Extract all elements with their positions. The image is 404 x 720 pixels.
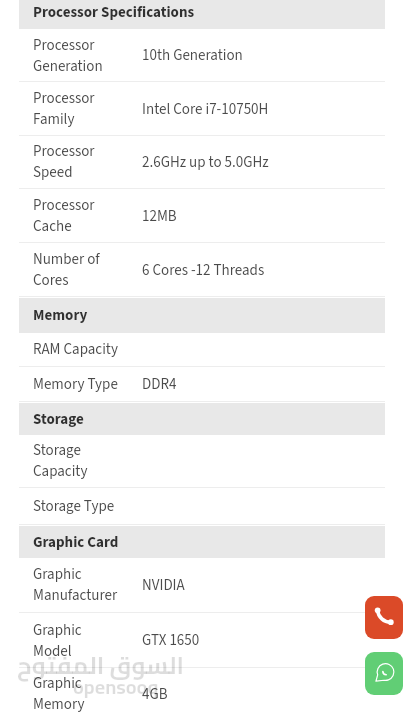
button[interactable]: Storage Type bbox=[19, 488, 385, 525]
button[interactable]: Graphic Manufacturer bbox=[19, 557, 385, 613]
staticText: DDR4 bbox=[142, 374, 177, 395]
button[interactable]: Graphic Memory bbox=[19, 667, 385, 720]
staticText: 12MB bbox=[142, 206, 177, 227]
button[interactable]: Storage Capacity bbox=[19, 434, 385, 488]
staticText: RAM Capacity bbox=[33, 339, 120, 360]
button[interactable]: Memory bbox=[19, 298, 385, 333]
button[interactable]: Graphic Card bbox=[19, 526, 385, 558]
staticText: Memory Type bbox=[33, 374, 120, 395]
button[interactable]: Processor Generation bbox=[19, 29, 385, 82]
button[interactable]: Memory Type bbox=[19, 367, 385, 402]
button[interactable]: Processor Specifications bbox=[19, 0, 385, 29]
staticText: Processor Speed bbox=[33, 141, 120, 183]
staticText: Graphic Card bbox=[33, 532, 119, 553]
staticText: Memory bbox=[33, 305, 88, 326]
staticText: 10th Generation bbox=[142, 45, 243, 66]
staticText: Storage Capacity bbox=[33, 440, 120, 482]
staticText: السوق المفتوح bbox=[17, 643, 185, 688]
staticText: 4GB bbox=[142, 684, 168, 705]
staticText: GTX 1650 bbox=[142, 630, 200, 651]
staticText: NVIDIA bbox=[142, 575, 185, 596]
staticText: opensooq bbox=[73, 668, 159, 705]
staticText: Graphic Model bbox=[33, 620, 120, 662]
staticText: 2.6GHz up to 5.0GHz bbox=[142, 152, 269, 173]
button[interactable]: Processor Cache bbox=[19, 189, 385, 243]
button[interactable]: Graphic Model bbox=[19, 613, 385, 668]
staticText: 6 Cores -12 Threads bbox=[142, 260, 265, 281]
staticText: Graphic Memory bbox=[33, 673, 120, 715]
staticText: Number of Cores bbox=[33, 249, 120, 291]
button[interactable]: Call bbox=[365, 596, 403, 639]
button[interactable]: RAM Capacity bbox=[19, 332, 385, 367]
staticText: Processor Cache bbox=[33, 195, 120, 237]
button[interactable]: Number of Cores bbox=[19, 243, 385, 297]
button[interactable]: Processor Speed bbox=[19, 135, 385, 189]
staticText: Storage bbox=[33, 409, 84, 430]
button[interactable]: Processor Family bbox=[19, 82, 385, 136]
staticText: Graphic Manufacturer bbox=[33, 564, 120, 606]
staticText: Storage Type bbox=[33, 496, 120, 517]
staticText: Intel Core i7-10750H bbox=[142, 99, 269, 120]
staticText: Processor Generation bbox=[33, 35, 120, 77]
button[interactable]: WhatsApp bbox=[365, 652, 403, 695]
staticText: Processor Specifications bbox=[33, 2, 195, 23]
button[interactable]: Storage bbox=[19, 403, 385, 435]
staticText: Processor Family bbox=[33, 88, 120, 130]
